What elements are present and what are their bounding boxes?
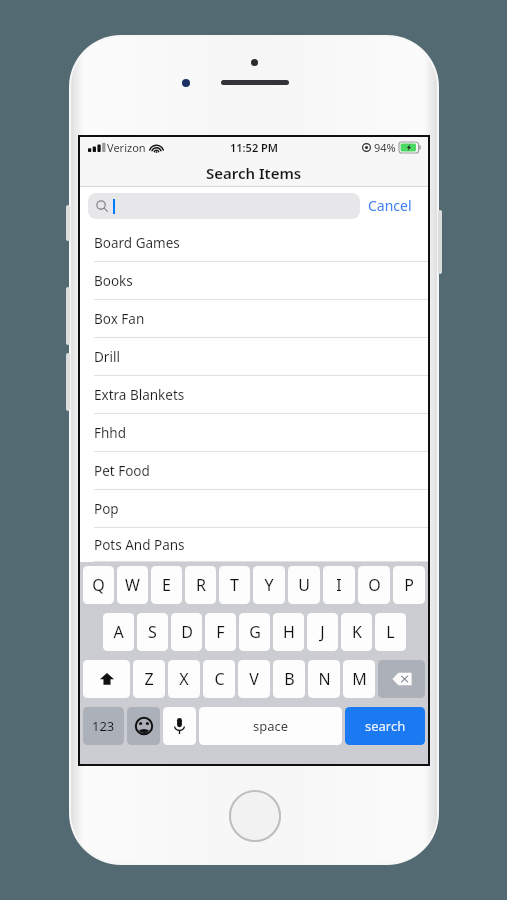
staticText: O [368, 574, 381, 596]
staticText: B [284, 668, 295, 690]
staticText: Pop [94, 500, 119, 518]
button[interactable]: Fhhd [80, 414, 428, 452]
button[interactable]: B [273, 660, 305, 698]
button[interactable]: 123 [83, 707, 124, 745]
staticText: V [249, 668, 259, 690]
staticText: Q [92, 574, 105, 596]
staticText: N [318, 668, 331, 690]
button[interactable]: J [307, 613, 338, 651]
button[interactable]: C [203, 660, 235, 698]
staticText: G [249, 621, 261, 643]
staticText: Z [144, 668, 154, 690]
button[interactable]: M [343, 660, 375, 698]
staticText: K [352, 621, 362, 643]
staticText: W [125, 574, 140, 596]
staticText: F [216, 621, 225, 643]
staticText: Board Games [94, 234, 180, 252]
staticText: 123 [92, 717, 115, 735]
staticText: 11:52 PM [230, 140, 279, 155]
staticText: Drill [94, 348, 120, 366]
button[interactable]: Extra Blankets [80, 376, 428, 414]
button[interactable]: space [199, 707, 342, 745]
button[interactable]: search [345, 707, 425, 745]
staticText: Y [264, 574, 274, 596]
button[interactable]: U [288, 566, 320, 604]
staticText: L [386, 621, 395, 643]
staticText: H [283, 621, 295, 643]
staticText: Search Items [206, 163, 302, 183]
staticText: Extra Blankets [94, 386, 185, 404]
button[interactable]: Pet Food [80, 452, 428, 490]
button[interactable]: R [185, 566, 216, 604]
button[interactable]: Board Games [80, 224, 428, 262]
button[interactable]: Q [83, 566, 114, 604]
staticText: R [196, 574, 206, 596]
button[interactable]: T [219, 566, 250, 604]
button[interactable]: Z [133, 660, 165, 698]
button[interactable]: Dictate [163, 707, 196, 745]
button[interactable]: Y [253, 566, 285, 604]
staticText: E [162, 574, 171, 596]
button[interactable]: A [103, 613, 134, 651]
button[interactable]: D [171, 613, 202, 651]
button[interactable]: N [308, 660, 340, 698]
button[interactable]: L [375, 613, 406, 651]
button[interactable]: Pots And Pans [80, 528, 428, 562]
button[interactable]: X [168, 660, 200, 698]
button[interactable]: O [358, 566, 390, 604]
button[interactable]: Box Fan [80, 300, 428, 338]
button[interactable]: Drill [80, 338, 428, 376]
button[interactable]: Shift [83, 660, 130, 698]
button[interactable]: Pop [80, 490, 428, 528]
staticText: J [320, 621, 325, 643]
button[interactable]: P [393, 566, 425, 604]
staticText: A [113, 621, 124, 643]
button[interactable]: Books [80, 262, 428, 300]
staticText: Verizon [107, 140, 146, 155]
button[interactable]: H [273, 613, 304, 651]
staticText: Books [94, 272, 133, 290]
button[interactable]: Cancel [360, 192, 420, 219]
staticText: S [148, 621, 157, 643]
staticText: 94% [374, 140, 396, 155]
staticText: search [365, 717, 406, 735]
staticText: D [181, 621, 193, 643]
staticText: M [352, 668, 367, 690]
staticText: I [336, 574, 342, 596]
staticText: Cancel [368, 196, 412, 215]
staticText: Pet Food [94, 462, 150, 480]
button[interactable]: E [151, 566, 182, 604]
button[interactable]: G [239, 613, 270, 651]
button[interactable]: Emoji [127, 707, 160, 745]
button[interactable]: S [137, 613, 168, 651]
staticText: space [253, 717, 289, 735]
button[interactable]: V [238, 660, 270, 698]
button[interactable]: F [205, 613, 236, 651]
button[interactable] [88, 193, 360, 219]
staticText: Fhhd [94, 424, 126, 442]
button[interactable]: K [341, 613, 372, 651]
button[interactable]: Backspace [378, 660, 425, 698]
button[interactable]: I [323, 566, 355, 604]
button[interactable]: W [117, 566, 148, 604]
staticText: Pots And Pans [94, 536, 185, 554]
staticText: C [214, 668, 225, 690]
staticText: X [179, 668, 189, 690]
staticText: U [298, 574, 310, 596]
staticText: T [230, 574, 239, 596]
staticText: P [404, 574, 414, 596]
staticText: Box Fan [94, 310, 145, 328]
